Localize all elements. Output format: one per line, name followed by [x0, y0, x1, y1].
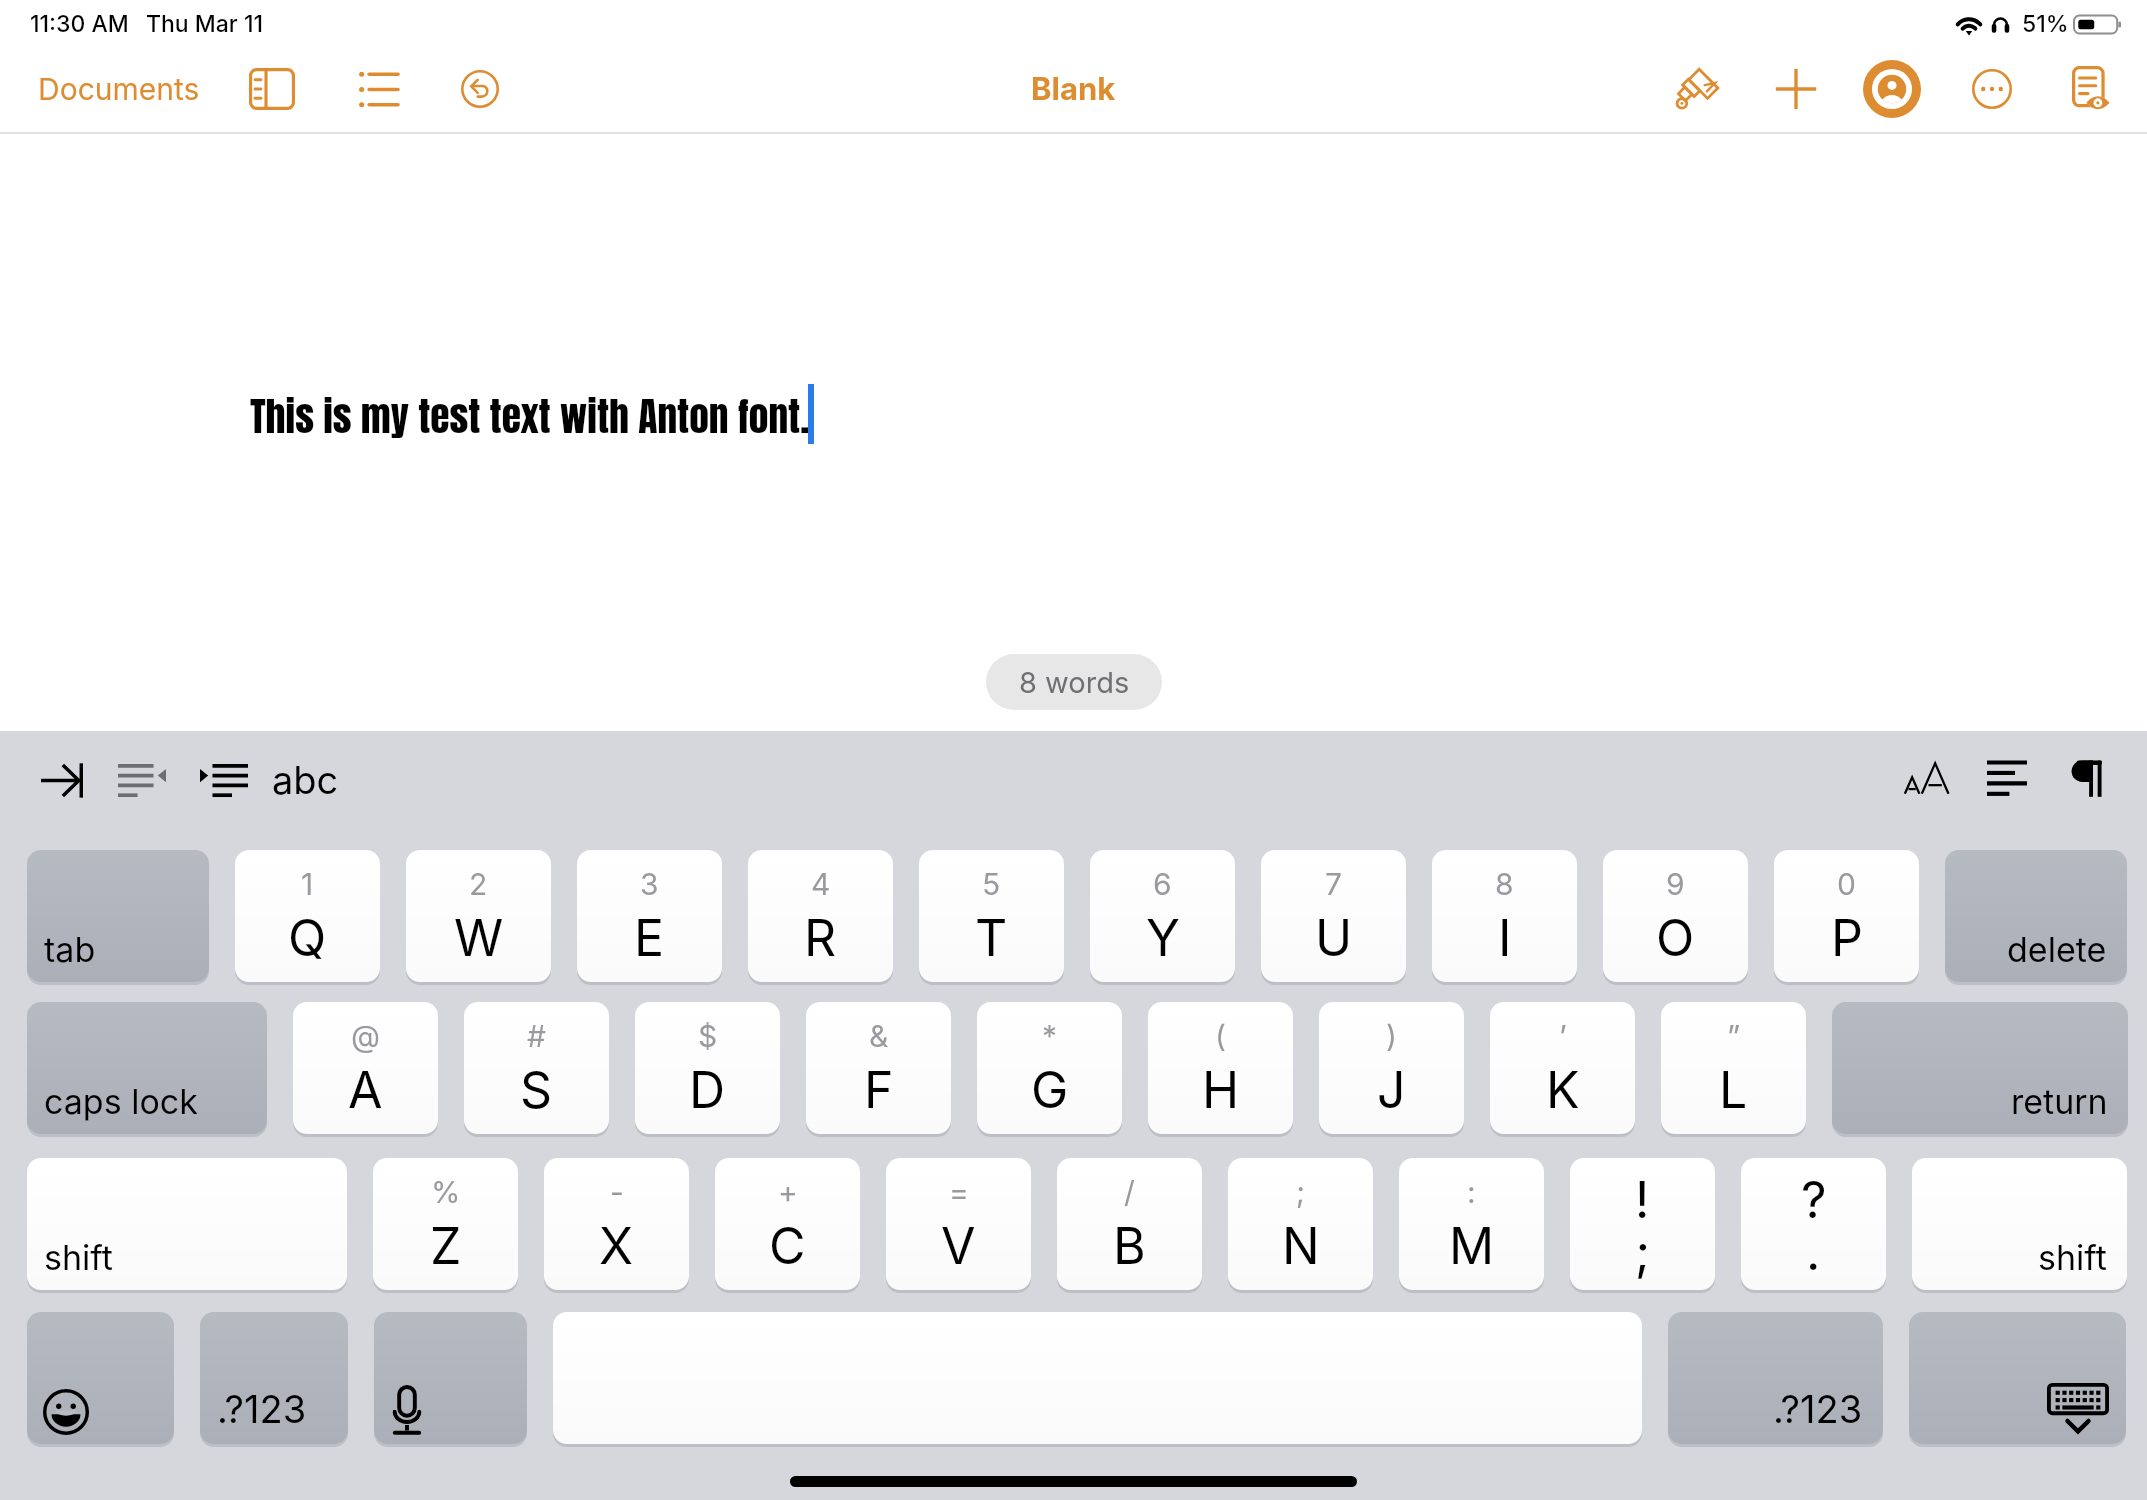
button[interactable]: .?123: [200, 1312, 348, 1444]
button[interactable]: Y: [1090, 850, 1235, 982]
staticText: 8 words: [1019, 665, 1130, 700]
button[interactable]: Account: [1857, 54, 1927, 124]
staticText: X: [599, 1216, 634, 1276]
button[interactable]: O: [1603, 850, 1748, 982]
button[interactable]: I: [1432, 850, 1577, 982]
button[interactable]: delete: [1945, 850, 2127, 982]
staticText: 5: [982, 866, 1001, 902]
staticText: Documents: [38, 71, 200, 107]
staticText: $: [698, 1018, 718, 1054]
staticText: ;: [1296, 1174, 1306, 1210]
button[interactable]: Dictate: [374, 1312, 527, 1444]
button[interactable]: C: [715, 1158, 860, 1290]
staticText: =: [949, 1174, 969, 1210]
staticText: This is my test text with Anton font.: [250, 387, 810, 446]
staticText: C: [769, 1216, 806, 1276]
staticText: .?123: [1773, 1386, 1863, 1432]
button[interactable]: Paragraph: [2049, 747, 2123, 809]
staticText: V: [941, 1216, 976, 1276]
staticText: 9: [1666, 866, 1685, 902]
button[interactable]: Alignment: [1970, 747, 2044, 809]
button[interactable]: Format painter: [1662, 54, 1732, 124]
button[interactable]: Indent: [190, 752, 258, 808]
staticText: abc: [272, 757, 339, 803]
button[interactable]: More: [1957, 54, 2027, 124]
staticText: ?: [1801, 1170, 1827, 1230]
button[interactable]: Emoji: [27, 1312, 174, 1444]
staticText: Blank: [1031, 70, 1116, 108]
staticText: shift: [2038, 1237, 2107, 1278]
staticText: delete: [2007, 929, 2107, 970]
staticText: N: [1282, 1216, 1320, 1276]
staticText: ): [1386, 1018, 1397, 1054]
button[interactable]: shift: [27, 1158, 347, 1290]
staticText: A: [348, 1060, 383, 1120]
staticText: 2: [469, 866, 488, 902]
button[interactable]: 8 words: [986, 654, 1162, 710]
staticText: L: [1719, 1060, 1748, 1120]
button[interactable]: return: [1832, 1002, 2128, 1134]
button[interactable]: G: [977, 1002, 1122, 1134]
button[interactable]: Preview: [2054, 54, 2124, 124]
staticText: O: [1656, 908, 1695, 968]
staticText: D: [689, 1060, 726, 1120]
staticText: %: [431, 1174, 461, 1210]
button[interactable]: shift: [1912, 1158, 2127, 1290]
button[interactable]: .: [1741, 1158, 1886, 1290]
staticText: /: [1124, 1174, 1135, 1210]
button[interactable]: Outdent: [108, 752, 176, 808]
staticText: 11:30 AM: [30, 10, 129, 38]
button[interactable]: L: [1661, 1002, 1806, 1134]
button[interactable]: A: [293, 1002, 438, 1134]
button[interactable]: Text size: [1890, 747, 1964, 809]
button[interactable]: U: [1261, 850, 1406, 982]
button[interactable]: Hide keyboard: [1909, 1312, 2126, 1444]
staticText: 1: [301, 866, 314, 902]
button[interactable]: tab: [27, 850, 209, 982]
button[interactable]: B: [1057, 1158, 1202, 1290]
button[interactable]: ;: [1570, 1158, 1715, 1290]
staticText: 8: [1495, 866, 1514, 902]
staticText: +: [778, 1174, 798, 1210]
button[interactable]: Undo: [449, 58, 511, 120]
staticText: E: [634, 908, 665, 968]
staticText: H: [1202, 1060, 1240, 1120]
button[interactable]: P: [1774, 850, 1919, 982]
staticText: &: [869, 1018, 889, 1054]
button[interactable]: T: [919, 850, 1064, 982]
staticText: 51%: [2022, 10, 2069, 38]
staticText: W: [454, 908, 504, 968]
staticText: ;: [1635, 1222, 1651, 1282]
staticText: 7: [1325, 866, 1342, 902]
button[interactable]: Sidebar: [241, 58, 303, 120]
button[interactable]: Add: [1761, 54, 1831, 124]
button[interactable]: E: [577, 850, 722, 982]
staticText: S: [520, 1060, 553, 1120]
button[interactable]: H: [1148, 1002, 1293, 1134]
button[interactable]: .?123: [1668, 1312, 1883, 1444]
button[interactable]: caps lock: [27, 1002, 267, 1134]
button[interactable]: W: [406, 850, 551, 982]
button[interactable]: D: [635, 1002, 780, 1134]
button[interactable]: Q: [235, 850, 380, 982]
button[interactable]: Documents: [36, 71, 202, 107]
staticText: tab: [44, 929, 96, 970]
button[interactable]: X: [544, 1158, 689, 1290]
staticText: .: [1806, 1222, 1821, 1282]
button[interactable]: J: [1319, 1002, 1464, 1134]
button[interactable]: abc: [264, 751, 347, 809]
staticText: R: [804, 908, 837, 968]
button[interactable]: Tab: [28, 752, 96, 808]
button[interactable]: N: [1228, 1158, 1373, 1290]
staticText: G: [1031, 1060, 1069, 1120]
button[interactable]: M: [1399, 1158, 1544, 1290]
button[interactable]: V: [886, 1158, 1031, 1290]
button[interactable]: F: [806, 1002, 951, 1134]
button[interactable]: Z: [373, 1158, 518, 1290]
staticText: *: [1042, 1018, 1058, 1054]
button[interactable]: K: [1490, 1002, 1635, 1134]
button[interactable]: R: [748, 850, 893, 982]
button[interactable]: List: [347, 58, 409, 120]
button[interactable]: S: [464, 1002, 609, 1134]
